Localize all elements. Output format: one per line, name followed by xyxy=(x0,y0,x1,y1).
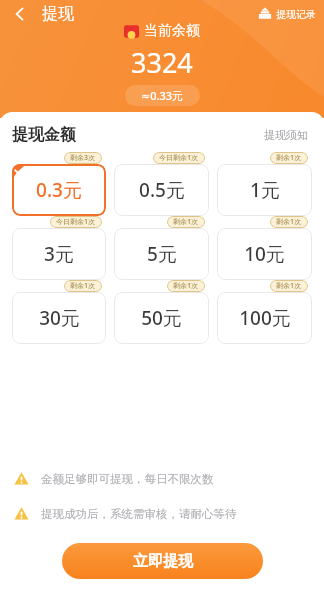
staticText: 今日剩余1次 xyxy=(159,153,199,163)
staticText: 剩余1次 xyxy=(276,281,302,291)
button[interactable]: 10元 xyxy=(217,228,312,280)
button[interactable]: 50元 xyxy=(114,292,209,344)
staticText: 当前余额 xyxy=(144,22,200,40)
button[interactable]: 0.3元 xyxy=(12,164,106,216)
staticText: 提现须知 xyxy=(264,128,308,142)
button[interactable]: 提现记录 xyxy=(258,7,316,21)
staticText: 立即提现 xyxy=(133,552,193,571)
staticText: 0.3元 xyxy=(36,177,82,203)
button[interactable]: 立即提现 xyxy=(62,543,263,579)
staticText: 提现记录 xyxy=(276,8,316,21)
staticText: 0.5元 xyxy=(139,177,185,203)
staticText: 剩余1次 xyxy=(276,153,302,163)
button[interactable]: 3元 xyxy=(12,228,106,280)
staticText: 剩余1次 xyxy=(276,217,302,227)
staticText: 10元 xyxy=(244,241,285,267)
staticText: 剩余1次 xyxy=(173,281,199,291)
staticText: 提现金额 xyxy=(12,125,76,145)
staticText: 金额足够即可提现，每日不限次数 xyxy=(41,472,214,486)
button[interactable]: 30元 xyxy=(12,292,106,344)
button[interactable]: 100元 xyxy=(217,292,312,344)
staticText: 剩余1次 xyxy=(70,281,96,291)
staticText: 3元 xyxy=(44,241,74,267)
button[interactable]: Back xyxy=(4,0,36,28)
staticText: 提现成功后，系统需审核，请耐心等待 xyxy=(41,507,237,521)
button[interactable]: 0.5元 xyxy=(114,164,209,216)
staticText: 剩余1次 xyxy=(173,217,199,227)
button[interactable]: 5元 xyxy=(114,228,209,280)
staticText: 100元 xyxy=(239,305,291,331)
staticText: 50元 xyxy=(141,305,182,331)
staticText: 5元 xyxy=(147,241,177,267)
staticText: 剩余3次 xyxy=(70,153,96,163)
staticText: 1元 xyxy=(250,177,280,203)
staticText: 30元 xyxy=(39,305,80,331)
button[interactable]: 提现须知 xyxy=(260,124,312,146)
staticText: 3324 xyxy=(131,44,193,81)
staticText: 提现 xyxy=(42,4,74,24)
staticText: 今日剩余1次 xyxy=(56,217,96,227)
button[interactable]: 1元 xyxy=(217,164,312,216)
staticText: ≈0.33元 xyxy=(141,88,184,103)
